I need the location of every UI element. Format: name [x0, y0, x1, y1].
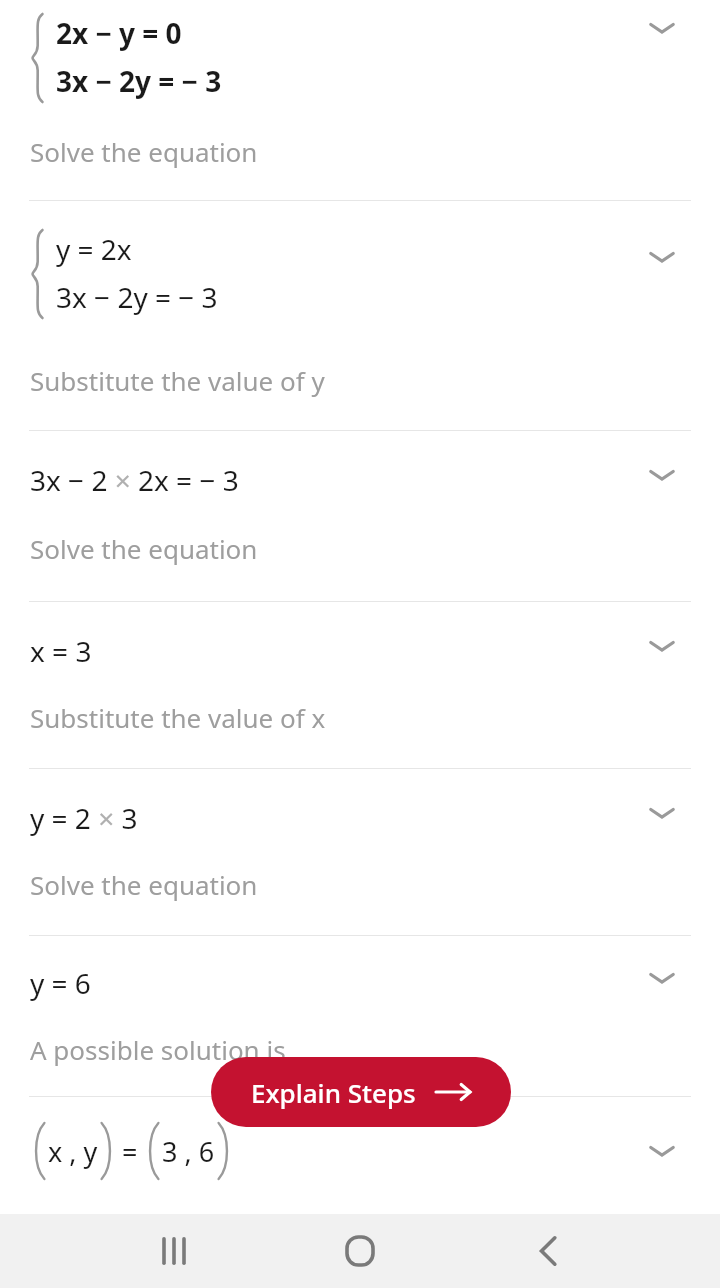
button[interactable]: Expand step	[634, 1123, 690, 1179]
button[interactable]	[0, 602, 720, 768]
staticText: Solve the equation	[30, 531, 258, 566]
button[interactable]: Explain Steps	[211, 1057, 511, 1127]
staticText: Substitute the value of y	[30, 363, 325, 398]
staticText: y = 2 × 3	[30, 799, 138, 837]
staticText: y = 2x	[56, 230, 132, 268]
staticText: A possible solution is	[30, 1032, 286, 1067]
button[interactable]: Expand step	[634, 0, 690, 56]
button[interactable]: Expand step	[634, 950, 690, 1006]
staticText: Substitute the value of x	[30, 700, 326, 735]
staticText: 2x − y = 0	[56, 14, 182, 52]
staticText: x = 3	[30, 632, 92, 670]
staticText: =	[122, 1133, 138, 1170]
button[interactable]	[0, 201, 720, 430]
staticText: 3 , 6	[162, 1133, 215, 1170]
button[interactable]: Back	[512, 1214, 584, 1288]
staticText: y = 6	[30, 964, 91, 1002]
button[interactable]	[0, 0, 720, 200]
button[interactable]	[0, 1097, 720, 1214]
staticText: x , y	[48, 1133, 98, 1170]
button[interactable]	[0, 769, 720, 935]
button[interactable]: Expand step	[634, 447, 690, 503]
button[interactable]	[0, 431, 720, 601]
staticText: Explain Steps	[251, 1075, 416, 1110]
button[interactable]: Expand step	[634, 229, 690, 285]
button[interactable]: Expand step	[634, 618, 690, 674]
staticText: Solve the equation	[30, 134, 258, 169]
staticText: 3x − 2 × 2x = − 3	[30, 461, 239, 499]
button[interactable]: Expand step	[634, 785, 690, 841]
staticText: 3x − 2y = − 3	[56, 278, 218, 316]
button[interactable]: Recents	[138, 1214, 210, 1288]
button[interactable]: Home	[324, 1214, 396, 1288]
staticText: Solve the equation	[30, 867, 258, 902]
staticText: 3x − 2y = − 3	[56, 62, 222, 100]
button[interactable]	[0, 936, 720, 1096]
